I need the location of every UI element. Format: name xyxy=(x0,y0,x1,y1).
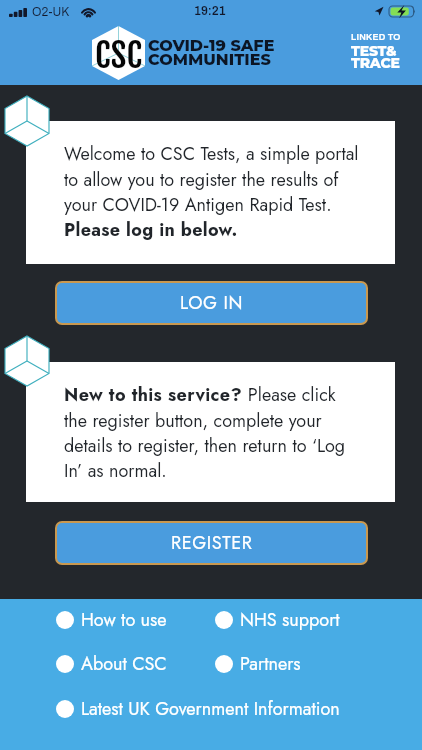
staticText: LOG IN xyxy=(180,290,244,316)
staticText: About CSC xyxy=(81,651,167,677)
button[interactable]: About CSC xyxy=(56,651,167,677)
staticText: Welcome to CSC Tests, a simple portal to… xyxy=(64,141,362,243)
button[interactable]: NHS support xyxy=(215,607,340,633)
staticText: CSC xyxy=(95,34,142,77)
staticText: O2-UK xyxy=(32,5,70,18)
staticText: How to use xyxy=(81,607,167,633)
staticText: 19:21 xyxy=(194,4,226,17)
button[interactable]: LOG IN xyxy=(57,283,366,323)
staticText: TEST& TRACE xyxy=(351,42,400,71)
staticText: Latest UK Government Information xyxy=(81,696,340,722)
button[interactable]: How to use xyxy=(56,607,167,633)
button[interactable]: Partners xyxy=(215,651,301,677)
button[interactable]: Latest UK Government Information xyxy=(56,696,340,722)
button[interactable]: REGISTER xyxy=(57,523,366,563)
staticText: REGISTER xyxy=(171,530,253,556)
staticText: COVID-19 SAFE COMMUNITIES xyxy=(148,36,275,69)
staticText: Partners xyxy=(240,651,301,677)
staticText: NHS support xyxy=(240,607,340,633)
staticText: New to this service? Please click the re… xyxy=(64,382,362,484)
staticText: LINKED TO xyxy=(351,32,401,42)
